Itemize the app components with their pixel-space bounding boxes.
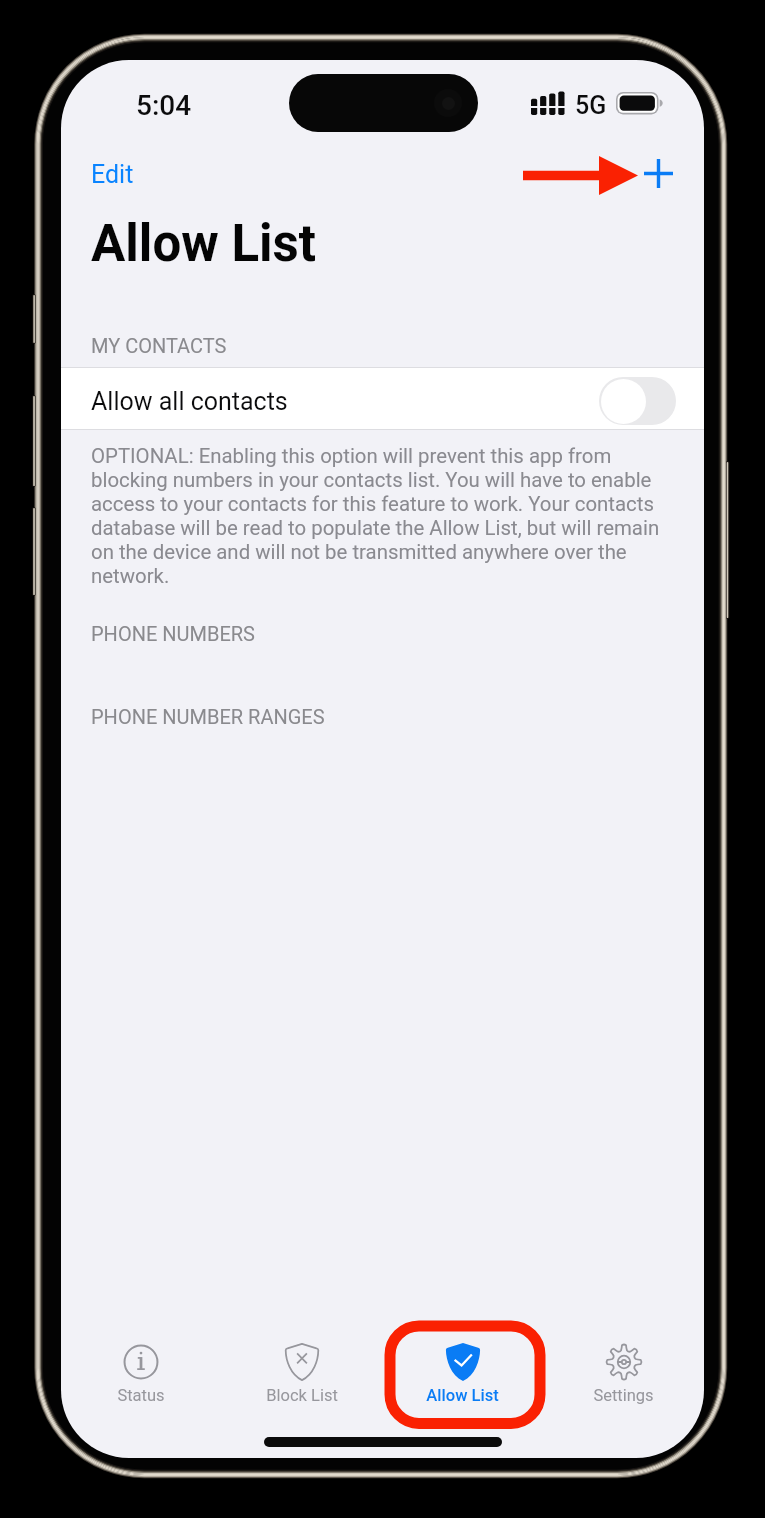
staticText: Allow all contacts: [91, 387, 288, 416]
staticText: Edit: [91, 160, 134, 189]
staticText: Allow List: [91, 214, 317, 274]
button[interactable]: Block List: [221, 1318, 382, 1405]
staticText: Settings: [593, 1386, 654, 1405]
button[interactable]: Add: [635, 150, 681, 196]
button[interactable]: Allow List: [382, 1318, 543, 1405]
staticText: 5:04: [136, 89, 192, 122]
staticText: PHONE NUMBERS: [91, 622, 255, 645]
button[interactable]: Status: [61, 1318, 221, 1405]
staticText: MY CONTACTS: [91, 334, 227, 357]
staticText: OPTIONAL: Enabling this option will prev…: [91, 444, 679, 588]
staticText: Status: [117, 1386, 165, 1405]
staticText: 5G: [575, 91, 607, 120]
button[interactable]: Edit: [77, 151, 148, 198]
staticText: PHONE NUMBER RANGES: [91, 705, 325, 728]
staticText: Allow List: [426, 1386, 499, 1405]
button[interactable]: Settings: [543, 1318, 704, 1405]
staticText: Block List: [266, 1386, 338, 1405]
button[interactable]: Allow all contacts: [61, 367, 704, 430]
